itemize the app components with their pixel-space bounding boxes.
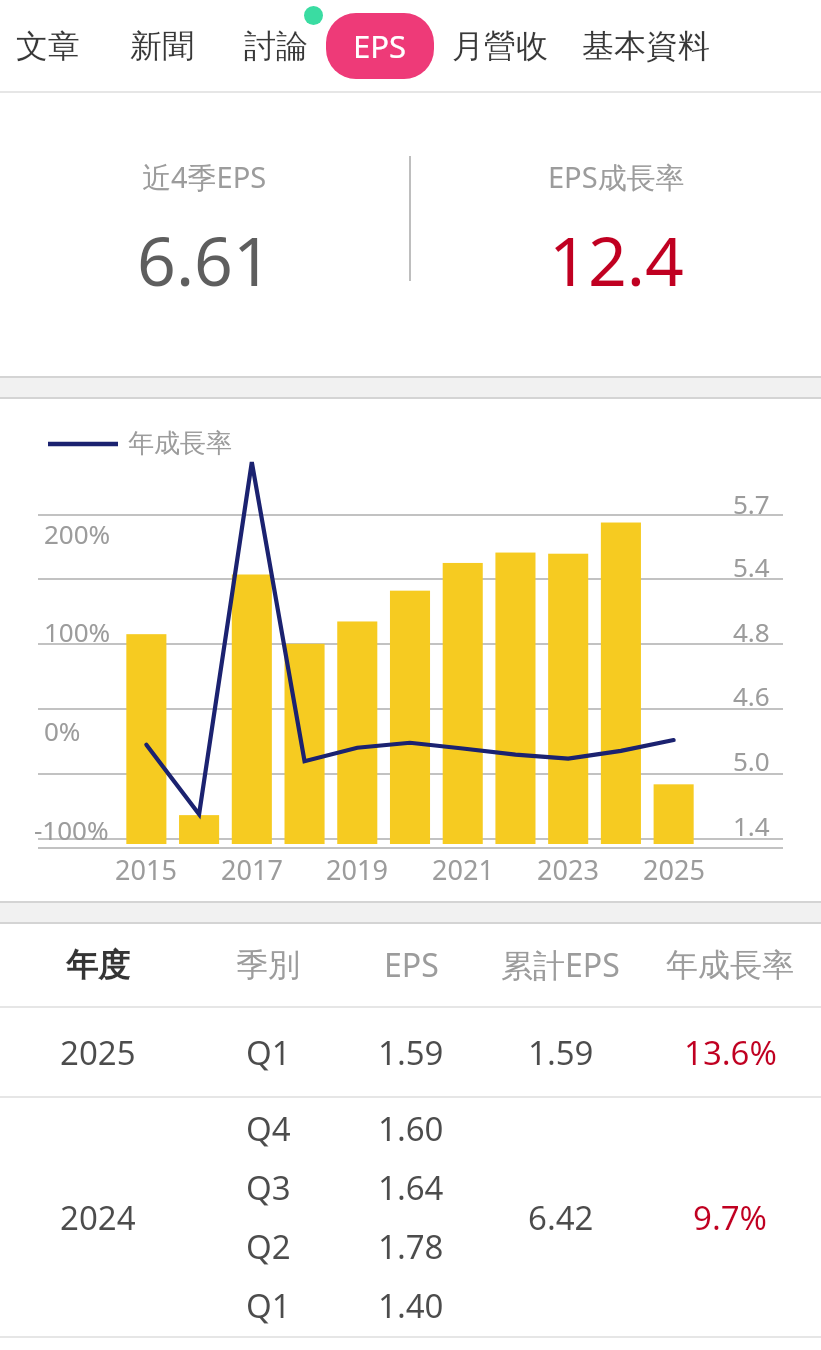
staticText: 年度 — [66, 945, 130, 985]
staticText: 1.78 — [378, 1224, 444, 1269]
button[interactable]: 季別 — [196, 924, 340, 1006]
button[interactable]: 基本資料 — [582, 14, 710, 78]
staticText: 4.8 — [733, 614, 770, 649]
staticText: -100% — [34, 812, 109, 847]
staticText: Q3 — [246, 1165, 291, 1210]
staticText: 1.4 — [733, 808, 770, 843]
staticText: 1.64 — [378, 1165, 444, 1210]
staticText: 文章 — [16, 26, 80, 66]
button[interactable]: 月營收 — [452, 14, 548, 78]
staticText: 200% — [44, 516, 111, 551]
staticText: 2025 — [60, 1030, 136, 1075]
staticText: 6.61 — [137, 213, 272, 306]
staticText: 近4季EPS — [142, 157, 267, 197]
staticText: Q1 — [246, 1030, 291, 1075]
button[interactable]: EPS — [340, 924, 482, 1006]
staticText: EPS成長率 — [548, 157, 685, 197]
staticText: EPS — [353, 25, 407, 67]
button[interactable]: EPS — [326, 13, 434, 79]
staticText: 9.7% — [693, 1195, 768, 1240]
button[interactable]: 2024 — [0, 1098, 821, 1336]
staticText: 2015 — [106, 851, 186, 888]
staticText: 1.59 — [528, 1030, 594, 1075]
staticText: 5.4 — [733, 549, 770, 584]
staticText: 6.42 — [528, 1195, 594, 1240]
staticText: 累計EPS — [501, 943, 620, 987]
staticText: 2023 — [528, 851, 608, 888]
staticText: 13.6% — [684, 1030, 777, 1075]
staticText: 12.4 — [549, 213, 684, 306]
staticText: 2019 — [317, 851, 397, 888]
staticText: 5.0 — [733, 743, 770, 778]
button[interactable]: 新聞 — [130, 14, 194, 78]
staticText: EPS — [384, 943, 439, 987]
staticText: 2025 — [634, 851, 714, 888]
button[interactable]: 2025 — [0, 1008, 821, 1096]
button[interactable]: 文章 — [16, 14, 80, 78]
staticText: 年成長率 — [666, 945, 794, 985]
button[interactable]: 年成長率 — [639, 924, 821, 1006]
staticText: 討論 — [244, 26, 308, 66]
staticText: Q4 — [246, 1106, 291, 1151]
staticText: 季別 — [236, 945, 300, 985]
staticText: Q2 — [246, 1224, 291, 1269]
staticText: 4.6 — [733, 678, 770, 713]
staticText: Q1 — [246, 1283, 291, 1328]
staticText: 5.7 — [733, 486, 770, 521]
staticText: 1.40 — [378, 1283, 444, 1328]
staticText: 新聞 — [130, 26, 194, 66]
other: New activity — [304, 6, 323, 25]
staticText: 年成長率 — [128, 427, 232, 460]
button[interactable]: 累計EPS — [482, 924, 639, 1006]
staticText: 2024 — [60, 1195, 136, 1240]
staticText: 0% — [44, 713, 81, 748]
staticText: 2021 — [423, 851, 503, 888]
staticText: 基本資料 — [582, 26, 710, 66]
button[interactable]: 年度 — [0, 924, 196, 1006]
staticText: 1.59 — [378, 1030, 444, 1075]
staticText: 月營收 — [452, 26, 548, 66]
button[interactable]: 討論 — [244, 14, 308, 78]
staticText: 100% — [44, 614, 111, 649]
staticText: 2017 — [212, 851, 292, 888]
staticText: 1.60 — [378, 1106, 444, 1151]
